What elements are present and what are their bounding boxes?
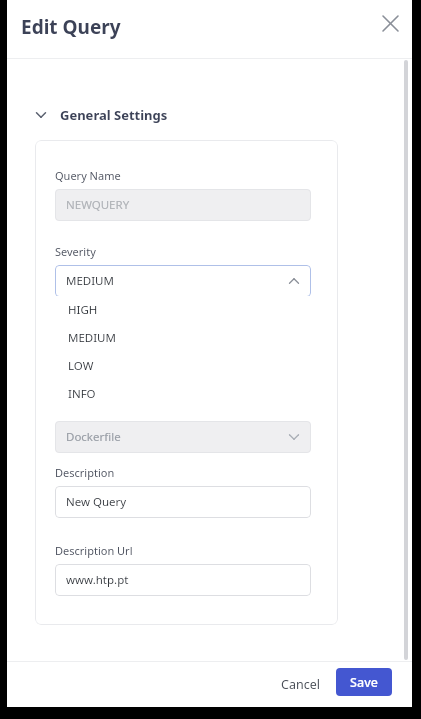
staticText: Edit Query xyxy=(21,14,121,40)
button[interactable]: NEWQUERY xyxy=(55,189,311,221)
staticText: Cancel xyxy=(281,676,320,693)
button[interactable]: General Settings xyxy=(33,103,168,127)
button[interactable]: Dockerfile xyxy=(55,421,311,453)
staticText: www.htp.pt xyxy=(66,572,129,588)
staticText: LOW xyxy=(68,358,94,374)
button[interactable]: MEDIUM xyxy=(55,324,311,352)
button[interactable]: HIGH xyxy=(55,296,311,324)
staticText: Description xyxy=(55,465,115,480)
staticText: HIGH xyxy=(68,302,98,318)
staticText: Save xyxy=(350,674,378,691)
staticText: INFO xyxy=(68,386,96,402)
button[interactable]: LOW xyxy=(55,352,311,380)
staticText: NEWQUERY xyxy=(66,197,130,213)
button[interactable]: Save xyxy=(336,668,392,696)
staticText: Description Url xyxy=(55,543,133,558)
button[interactable]: Close xyxy=(372,5,408,41)
staticText: MEDIUM xyxy=(66,273,114,289)
staticText: Query Name xyxy=(55,168,121,183)
button[interactable]: New Query xyxy=(55,486,311,518)
staticText: Dockerfile xyxy=(66,429,121,445)
button[interactable]: INFO xyxy=(55,380,311,408)
button[interactable]: www.htp.pt xyxy=(55,564,311,596)
button[interactable]: Cancel xyxy=(271,669,329,699)
staticText: New Query xyxy=(66,494,127,510)
staticText: General Settings xyxy=(60,106,168,124)
staticText: Severity xyxy=(55,244,96,259)
button[interactable]: MEDIUM xyxy=(55,265,311,297)
staticText: MEDIUM xyxy=(68,330,116,346)
